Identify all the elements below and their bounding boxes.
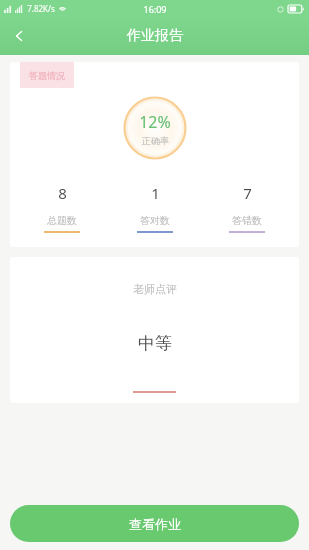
staticText: 中等	[138, 333, 172, 354]
staticText: 7.82K/s	[27, 3, 55, 14]
staticText: 12%	[139, 111, 171, 133]
staticText: 答错数	[232, 214, 262, 227]
staticText: 8	[58, 183, 67, 203]
staticText: 查看作业	[129, 516, 181, 532]
staticText: 作业报告	[127, 27, 183, 45]
staticText: 16:09	[143, 3, 167, 15]
button[interactable]: 8	[22, 183, 102, 233]
staticText: 正确率	[142, 135, 169, 146]
staticText: 答对数	[140, 214, 170, 227]
staticText: 7	[243, 183, 252, 203]
button[interactable]: 查看作业	[10, 505, 299, 542]
button[interactable]: 7	[207, 183, 287, 233]
staticText: 1	[151, 183, 160, 203]
staticText: 总题数	[47, 214, 77, 227]
button[interactable]: 1	[115, 183, 195, 233]
button[interactable]: Back	[0, 17, 38, 55]
staticText: 老师点评	[133, 282, 177, 296]
staticText: 答题情况	[29, 70, 65, 81]
